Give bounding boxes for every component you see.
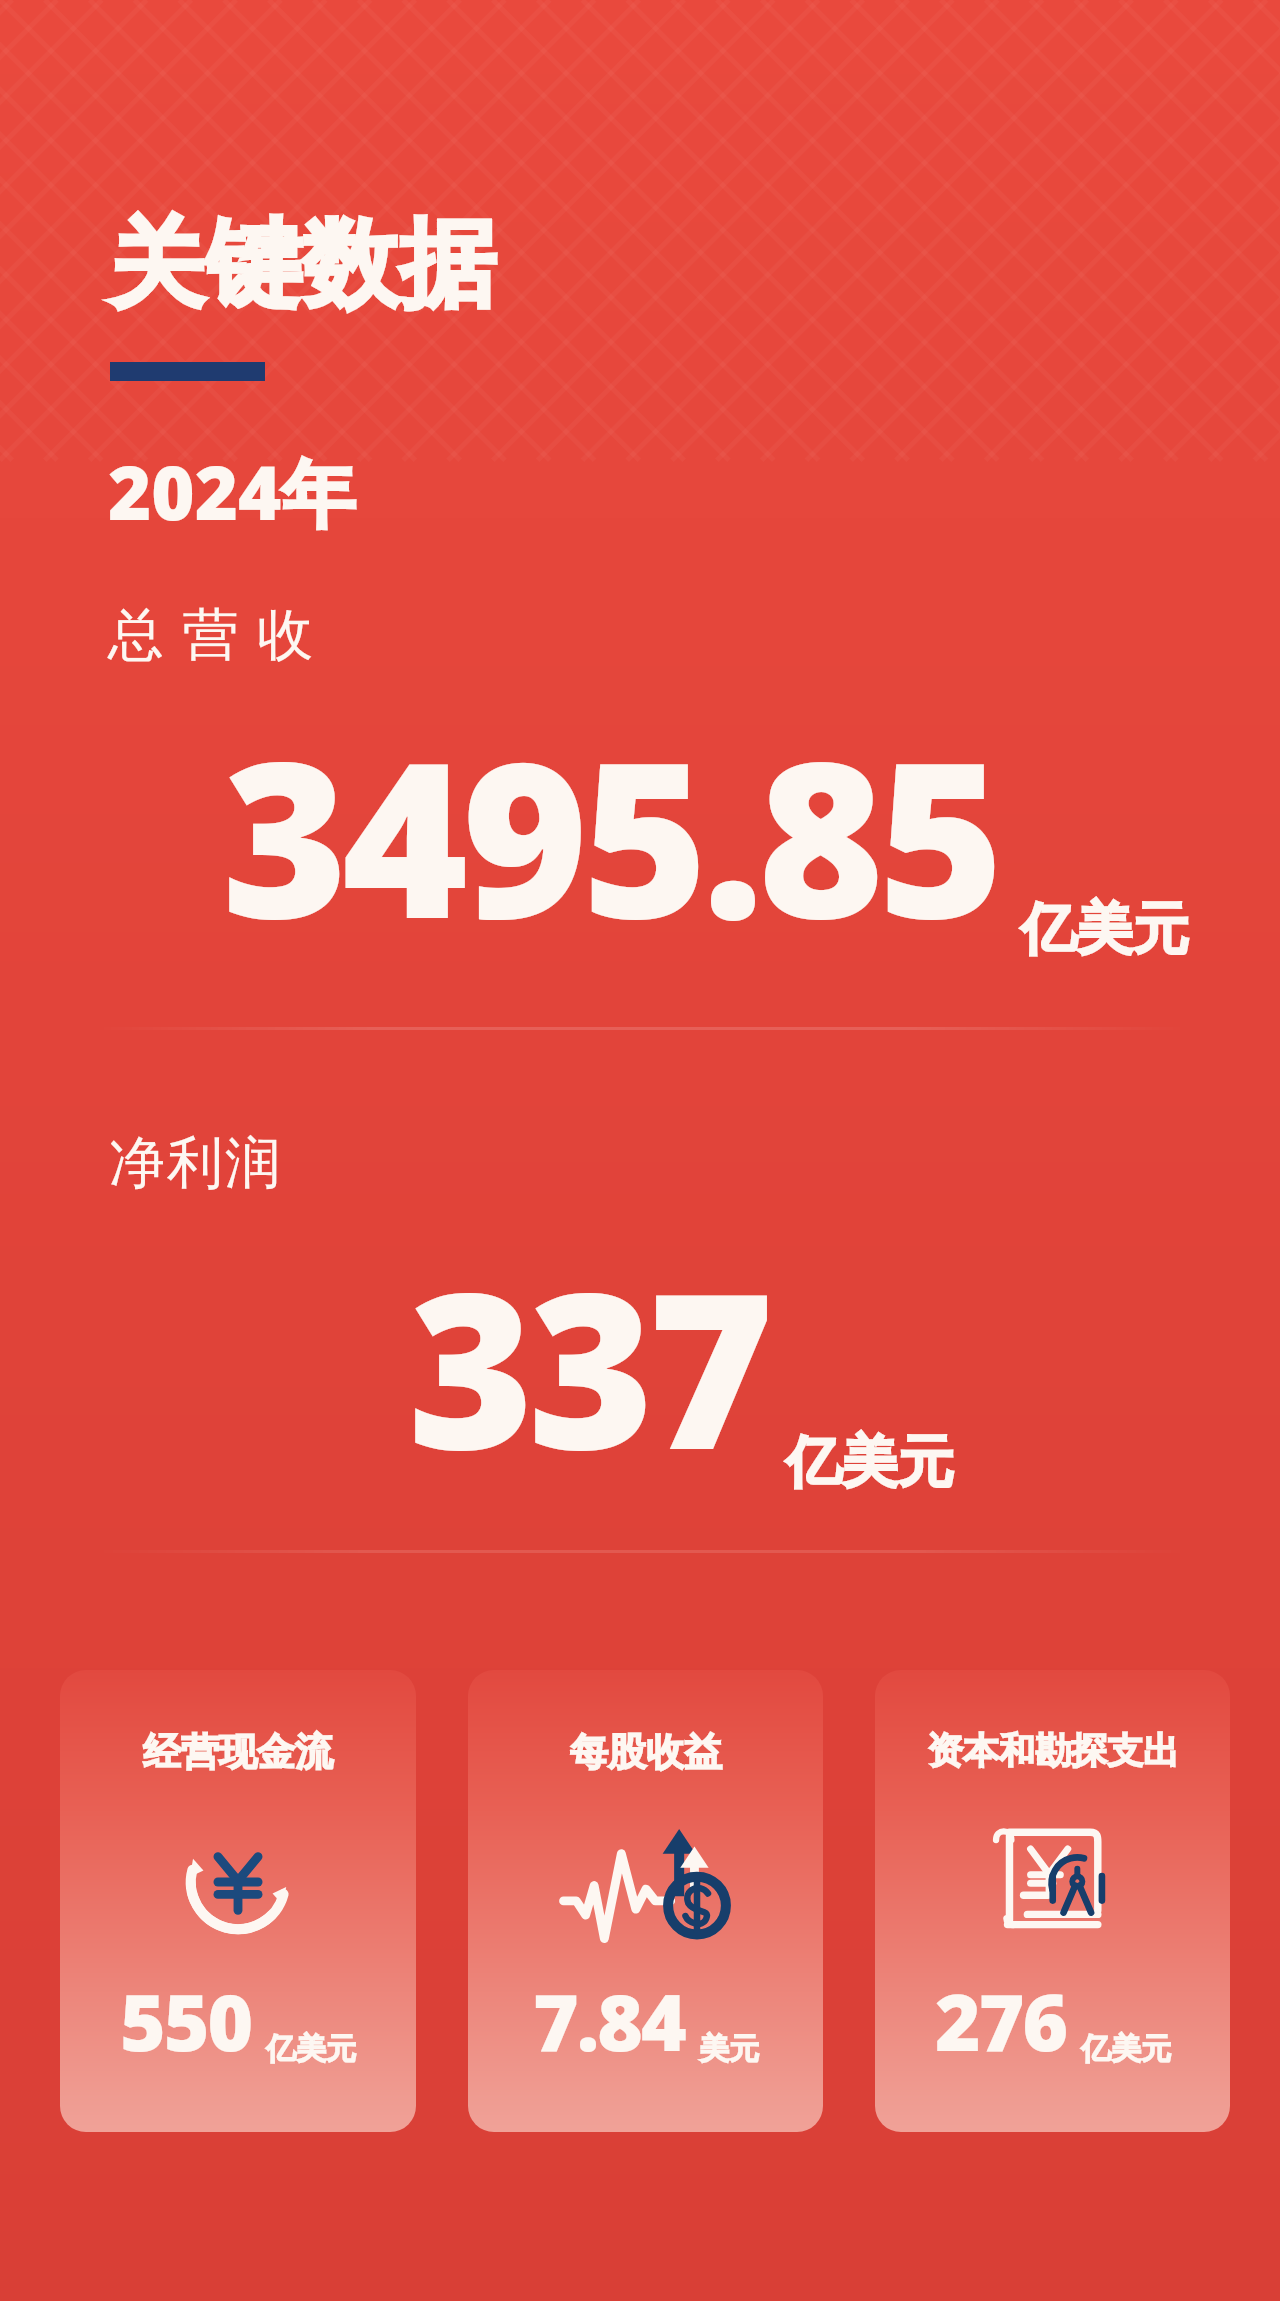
staticText: 3495.85 bbox=[222, 688, 999, 981]
staticText: 资本和勘探支出 bbox=[927, 1728, 1179, 1773]
button[interactable]: 关键数据 bbox=[108, 205, 496, 326]
staticText: 每股收益 bbox=[570, 1728, 722, 1776]
staticText: 亿美元 bbox=[1021, 894, 1189, 965]
button[interactable]: Operating cash flow bbox=[60, 1670, 416, 2132]
button[interactable]: Earnings per share bbox=[468, 1670, 823, 2132]
staticText: 美元 bbox=[699, 2030, 759, 2068]
button[interactable]: Capital and exploration expenditure bbox=[875, 1670, 1230, 2132]
staticText: 经营现金流 bbox=[143, 1728, 333, 1776]
staticText: 276 bbox=[935, 1968, 1067, 2074]
staticText: 亿美元 bbox=[786, 1427, 954, 1498]
staticText: 550 bbox=[120, 1968, 252, 2074]
staticText: 7.84 bbox=[533, 1968, 685, 2074]
staticText: 关键数据 bbox=[108, 205, 496, 326]
staticText: 总 营 收 bbox=[108, 594, 316, 670]
staticText: 亿美元 bbox=[1081, 2030, 1171, 2068]
staticText: 亿美元 bbox=[266, 2030, 356, 2068]
staticText: 2024年 bbox=[108, 441, 356, 542]
staticText: 337 bbox=[408, 1219, 768, 1512]
staticText: 净利润 bbox=[108, 1128, 282, 1199]
